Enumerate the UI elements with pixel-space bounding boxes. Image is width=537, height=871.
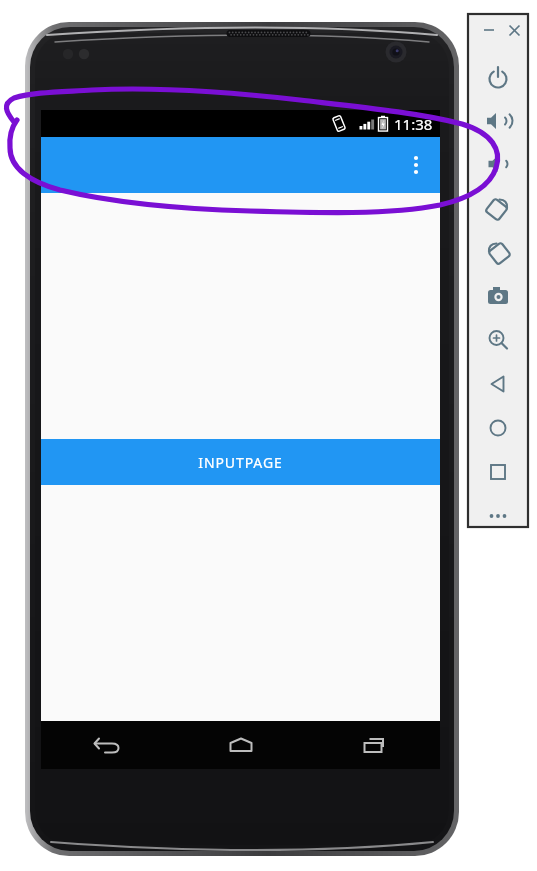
button[interactable]: Zoom [481, 323, 515, 357]
button[interactable]: Back [481, 367, 515, 401]
button[interactable]: Home [481, 411, 515, 445]
button[interactable]: Overview [481, 455, 515, 489]
button[interactable]: Volume down [481, 147, 515, 181]
button[interactable]: More options [392, 141, 440, 189]
button[interactable]: Rotate right [481, 235, 515, 269]
button[interactable]: Minimize [478, 19, 500, 41]
button[interactable]: Recent apps [307, 721, 440, 769]
staticText: INPUTPAGE [198, 453, 283, 472]
button[interactable]: Power [481, 61, 515, 95]
button[interactable]: INPUTPAGE [41, 439, 440, 485]
button[interactable]: Take screenshot [481, 279, 515, 313]
staticText: 11:38 [394, 114, 433, 134]
button[interactable]: Back [41, 721, 174, 769]
button[interactable]: Volume up [481, 104, 515, 138]
button[interactable]: More [481, 499, 515, 533]
button[interactable]: Home [174, 721, 307, 769]
button[interactable]: Rotate left [481, 191, 515, 225]
button[interactable]: Close [503, 19, 525, 41]
